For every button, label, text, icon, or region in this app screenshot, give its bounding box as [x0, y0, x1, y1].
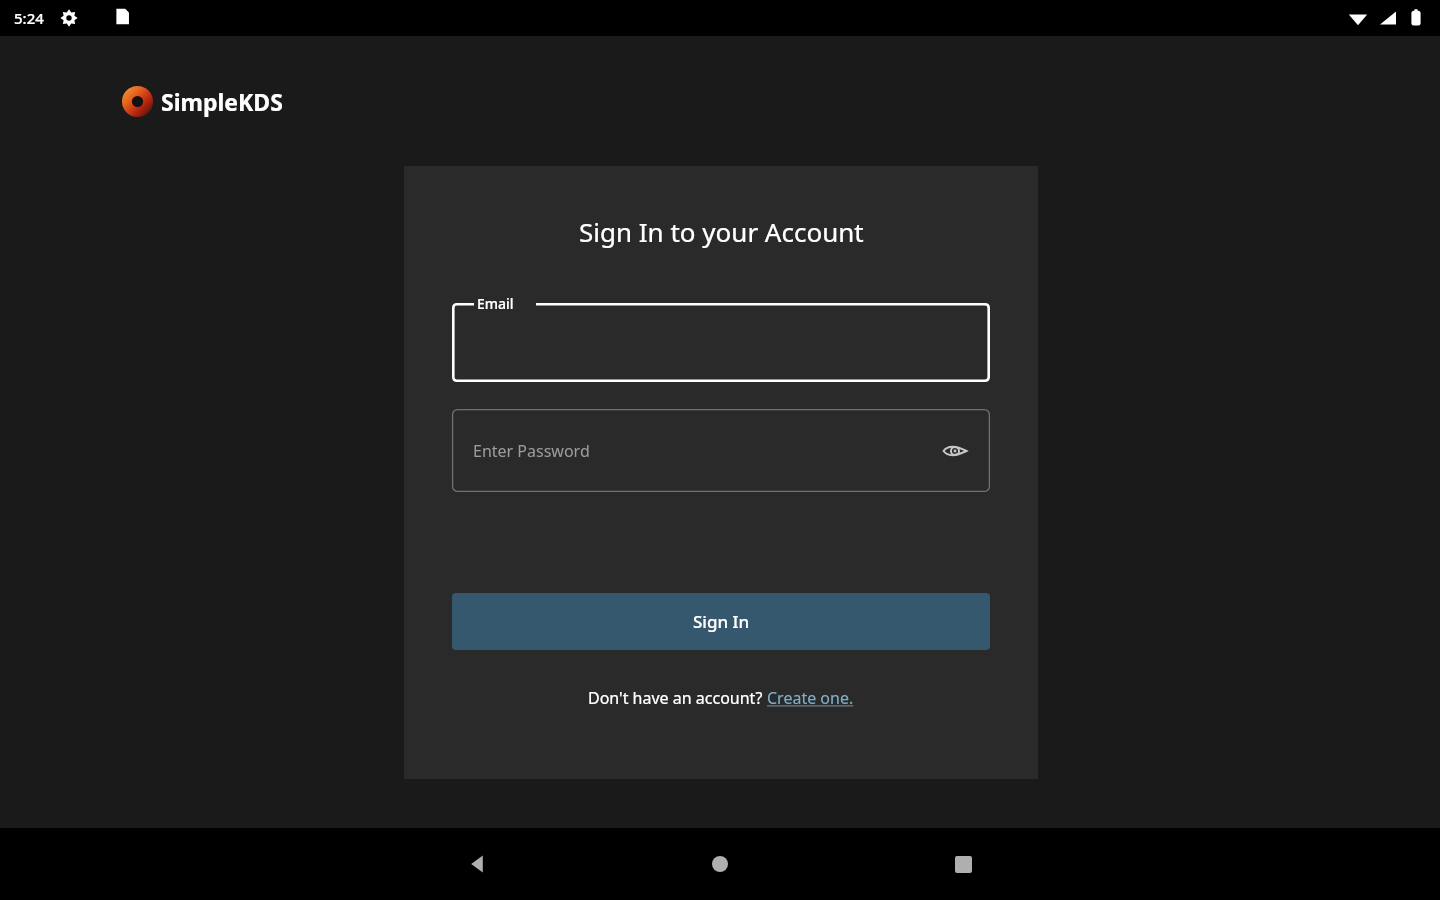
- staticText: Email: [477, 294, 514, 313]
- button[interactable]: Create one.: [767, 687, 854, 709]
- staticText: 5:24: [14, 8, 44, 28]
- staticText: Don't have an account?: [588, 687, 767, 709]
- button[interactable]: Show password: [938, 434, 972, 468]
- button[interactable]: Enter Password: [452, 409, 990, 492]
- button[interactable]: Sign In: [452, 593, 990, 650]
- staticText: Enter Password: [473, 440, 590, 462]
- button[interactable]: Back: [454, 840, 502, 888]
- button[interactable]: Home: [696, 840, 744, 888]
- button[interactable]: Email: [452, 290, 990, 382]
- button[interactable]: Recent apps: [939, 840, 987, 888]
- staticText: Sign In: [693, 610, 750, 633]
- staticText: SimpleKDS: [161, 86, 283, 117]
- staticText: Create one.: [767, 687, 854, 709]
- staticText: Sign In to your Account: [579, 214, 864, 249]
